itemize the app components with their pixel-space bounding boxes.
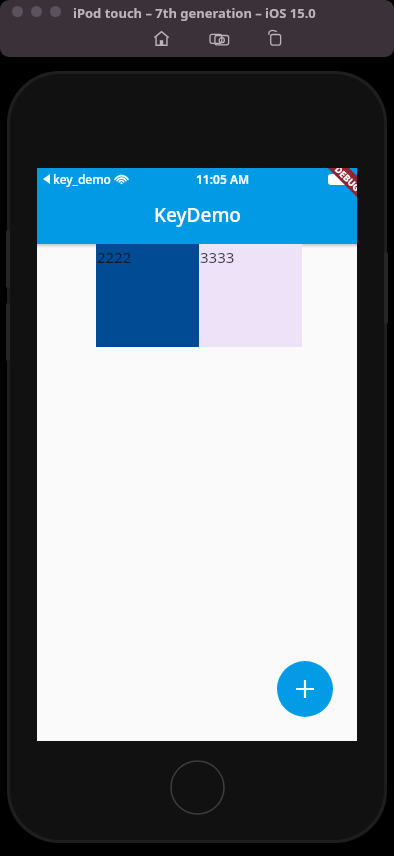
button[interactable]: Home [148, 28, 174, 48]
staticText: 11:05 AM [196, 171, 250, 187]
staticText: DEBUG [333, 168, 357, 193]
button[interactable]: Window control [31, 6, 42, 17]
button[interactable]: Back to key_demo [43, 171, 128, 187]
button[interactable]: Add [277, 661, 333, 717]
button[interactable]: Screenshot [206, 28, 232, 48]
staticText: KeyDemo [154, 202, 241, 228]
button[interactable]: 3333 [199, 244, 302, 347]
button[interactable]: Home button [170, 760, 225, 815]
staticText: iPod touch – 7th generation – iOS 15.0 [73, 4, 316, 22]
button[interactable]: 2222 [96, 244, 199, 347]
staticText: 3333 [200, 247, 235, 267]
button[interactable]: Window control [12, 6, 23, 17]
button[interactable]: Rotate [262, 28, 288, 48]
button[interactable]: Window control [50, 6, 61, 17]
staticText: 2222 [97, 247, 132, 267]
staticText: key_demo [53, 171, 111, 187]
